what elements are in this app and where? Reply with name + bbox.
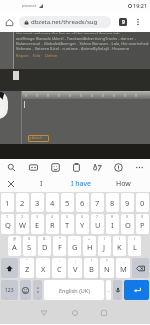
button[interactable]: 1: [1, 193, 14, 212]
staticText: 4: [50, 198, 55, 208]
button[interactable]: More: [129, 159, 150, 176]
button[interactable]: !: [84, 258, 98, 278]
staticText: 5: [65, 198, 70, 208]
button[interactable]: :: [52, 258, 66, 278]
staticText: V: [73, 264, 78, 274]
button[interactable]: ?: [100, 258, 114, 278]
button[interactable]: -: [68, 236, 81, 256]
staticText: 1: [5, 198, 10, 208]
staticText: English (UK): [59, 287, 90, 294]
button[interactable]: Tabs: [116, 15, 129, 28]
button[interactable]: ;: [68, 258, 82, 278]
staticText: the most welcome the forum of the genera…: [16, 31, 120, 34]
button[interactable]: 3: [31, 193, 44, 212]
button[interactable]: 6: [76, 214, 89, 234]
button[interactable]: Space: [44, 280, 104, 300]
button[interactable]: dbzeta.net/threads/sug: [19, 16, 111, 28]
button[interactable]: ): [113, 236, 126, 256]
button[interactable]: 2: [16, 214, 29, 234]
button[interactable]: Search: [0, 159, 22, 176]
button[interactable]: 9: [121, 193, 134, 212]
staticText: 1: [6, 214, 9, 219]
button[interactable]: I have: [60, 176, 102, 192]
staticText: 8: [111, 214, 114, 219]
button[interactable]: 1: [1, 214, 14, 234]
staticText: ): [119, 236, 121, 241]
button[interactable]: I: [22, 176, 60, 192]
button[interactable]: Comma: [33, 280, 42, 300]
button[interactable]: GIF: [22, 159, 44, 176]
button[interactable]: ': [36, 258, 50, 278]
staticText: Z: [25, 264, 30, 274]
button[interactable]: Settings: [108, 159, 129, 176]
button[interactable]: Period: [106, 280, 111, 300]
staticText: A: [12, 242, 17, 252]
button[interactable]: Symbols: [1, 280, 18, 300]
staticText: Edit: [33, 53, 41, 58]
button[interactable]: 9: [121, 214, 134, 234]
button[interactable]: Back: [37, 306, 51, 320]
button[interactable]: 3: [31, 214, 44, 234]
button[interactable]: Backspace: [132, 258, 149, 278]
staticText: F: [58, 242, 62, 252]
button[interactable]: 7: [91, 193, 104, 212]
staticText: ": [26, 258, 28, 263]
button[interactable]: #: [23, 236, 36, 256]
staticText: B: [89, 264, 94, 274]
button[interactable]: +: [83, 236, 96, 256]
button[interactable]: 5: [61, 193, 74, 212]
staticText: U: [95, 220, 101, 230]
staticText: &: [43, 236, 46, 241]
button[interactable]: ": [20, 258, 34, 278]
staticText: ,: [123, 258, 124, 263]
button[interactable]: Shift: [1, 258, 18, 278]
button[interactable]: 6: [76, 193, 89, 212]
button[interactable]: How: [102, 176, 144, 192]
button[interactable]: More options: [131, 15, 144, 28]
button[interactable]: /: [128, 236, 141, 256]
staticText: 7: [95, 198, 100, 208]
staticText: Y: [80, 220, 85, 230]
button[interactable]: Expand toolbar: [0, 176, 22, 192]
staticText: I: [40, 179, 43, 189]
staticText: -: [74, 236, 76, 241]
button[interactable]: ,: [116, 258, 130, 278]
button[interactable]: Home: [2, 15, 16, 29]
staticText: 5: [66, 214, 69, 219]
staticText: 4: [51, 214, 54, 219]
button[interactable]: (: [98, 236, 111, 256]
staticText: J: [103, 242, 106, 252]
staticText: :: [59, 258, 60, 263]
button[interactable]: 8: [106, 193, 119, 212]
button[interactable]: Attach files: [28, 135, 49, 142]
button[interactable]: 5: [61, 214, 74, 234]
button[interactable]: *: [53, 236, 66, 256]
button[interactable]: &: [38, 236, 51, 256]
button[interactable]: 4: [46, 214, 59, 234]
button[interactable]: Enter: [124, 280, 149, 300]
staticText: 9: [125, 198, 130, 208]
staticText: +: [88, 236, 91, 241]
button[interactable]: 0: [136, 193, 149, 212]
button[interactable]: 8: [106, 214, 119, 234]
staticText: 19:21: [133, 2, 148, 9]
staticText: !: [91, 258, 92, 263]
button[interactable]: Sticker: [44, 159, 66, 176]
staticText: S: [27, 242, 32, 252]
staticText: dbzeta.net/threads/sug: [31, 18, 98, 26]
staticText: K: [117, 242, 122, 252]
button[interactable]: 0: [136, 214, 149, 234]
button[interactable]: Emoji: [20, 280, 31, 300]
button[interactable]: 7: [91, 214, 104, 234]
button[interactable]: @: [8, 236, 21, 256]
staticText: 9: [122, 19, 125, 26]
button[interactable]: Home: [68, 306, 82, 320]
button[interactable]: Clipboard: [66, 159, 87, 176]
button[interactable]: 2: [16, 193, 29, 212]
staticText: X: [41, 264, 46, 274]
button[interactable]: Voice input: [113, 280, 122, 300]
button[interactable]: Recent apps: [97, 306, 111, 320]
button[interactable]: Translate: [87, 159, 108, 176]
button[interactable]: 4: [46, 193, 59, 212]
